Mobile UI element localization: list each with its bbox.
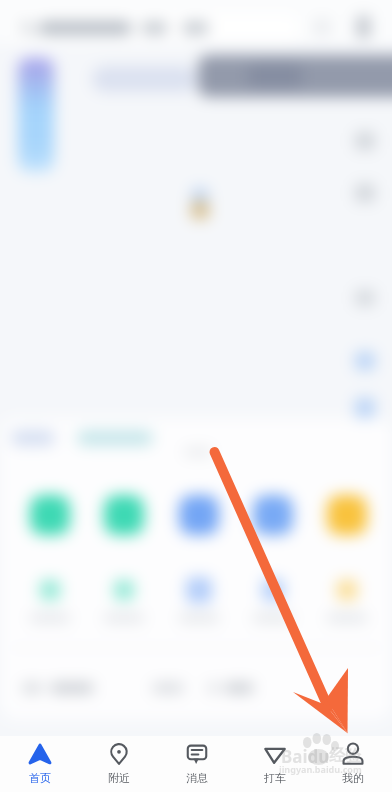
button[interactable]: 消息 [158, 736, 236, 792]
other: 消息 [186, 743, 208, 765]
button[interactable]: 我的 [314, 736, 392, 792]
staticText: Baidu [281, 745, 330, 768]
staticText: 打车 [264, 771, 286, 785]
staticText: 经验 [329, 746, 361, 766]
button[interactable]: 首页 [0, 736, 79, 792]
staticText: 我的 [342, 771, 364, 785]
staticText: 首页 [29, 771, 51, 785]
other: 打车 [264, 743, 286, 765]
button[interactable]: 打车 [236, 736, 314, 792]
button[interactable]: 附近 [79, 736, 158, 792]
staticText: jingyan.baidu.com [279, 763, 362, 775]
staticText: 附近 [108, 771, 130, 785]
other: 首页 [29, 743, 51, 765]
staticText: 消息 [186, 771, 208, 785]
other: 我的 [342, 743, 364, 765]
other: 附近 [108, 743, 130, 765]
